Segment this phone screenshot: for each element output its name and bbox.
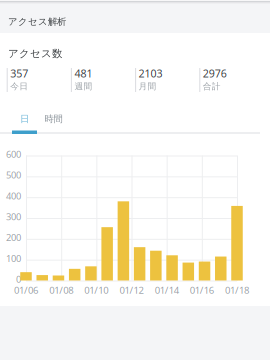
staticText: 0 bbox=[16, 273, 21, 285]
staticText: 時間 bbox=[44, 113, 62, 125]
staticText: 01/06 bbox=[14, 283, 38, 297]
staticText: 01/12 bbox=[119, 283, 143, 297]
button[interactable]: 日 bbox=[12, 110, 37, 128]
staticText: 2976 bbox=[203, 66, 227, 80]
button[interactable]: 時間 bbox=[39, 110, 68, 128]
staticText: 週間 bbox=[74, 81, 92, 92]
staticText: 300 bbox=[6, 210, 21, 223]
staticText: 400 bbox=[6, 189, 21, 202]
staticText: 01/14 bbox=[155, 283, 179, 297]
staticText: 今日 bbox=[10, 81, 28, 92]
staticText: 月間 bbox=[139, 81, 157, 92]
staticText: 01/10 bbox=[84, 283, 108, 297]
staticText: 2103 bbox=[139, 66, 163, 80]
staticText: 日 bbox=[20, 113, 29, 125]
staticText: アクセス数 bbox=[8, 47, 62, 60]
staticText: 合計 bbox=[203, 81, 221, 92]
staticText: 481 bbox=[74, 66, 92, 80]
staticText: 500 bbox=[6, 169, 21, 181]
staticText: 01/16 bbox=[190, 283, 214, 297]
staticText: 200 bbox=[6, 231, 21, 244]
staticText: 01/08 bbox=[49, 283, 73, 297]
staticText: アクセス解析 bbox=[8, 16, 66, 27]
staticText: 357 bbox=[10, 66, 28, 80]
staticText: 100 bbox=[6, 252, 21, 265]
staticText: 600 bbox=[6, 148, 21, 160]
staticText: 01/18 bbox=[225, 283, 249, 297]
